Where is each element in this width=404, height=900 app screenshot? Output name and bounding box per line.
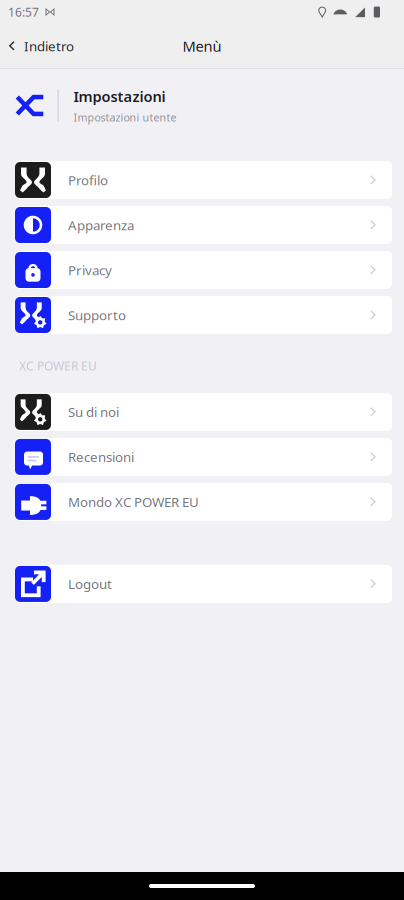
button[interactable]: Apparenza [15, 206, 392, 244]
button[interactable]: Indietro [0, 24, 88, 68]
button[interactable]: Privacy [15, 251, 392, 289]
button[interactable]: Su di noi [15, 393, 392, 431]
button[interactable]: Mondo XC POWER EU [15, 483, 392, 521]
staticText: Su di noi [68, 403, 119, 421]
button[interactable]: Profilo [15, 161, 392, 199]
staticText: Menù [182, 36, 221, 56]
button[interactable]: Recensioni [15, 438, 392, 476]
staticText: 16:57 [8, 4, 39, 20]
staticText: Logout [68, 575, 112, 593]
button[interactable]: Logout [15, 565, 392, 603]
button[interactable]: Supporto [15, 296, 392, 334]
staticText: Impostazioni [74, 87, 166, 106]
staticText: Profilo [68, 171, 108, 189]
staticText: Privacy [68, 261, 112, 279]
staticText: Apparenza [68, 216, 134, 234]
staticText: XC POWER EU [19, 358, 97, 374]
staticText: Recensioni [68, 448, 134, 466]
staticText: Supporto [68, 306, 126, 324]
staticText: Impostazioni utente [74, 110, 177, 124]
staticText: Indietro [24, 37, 74, 55]
staticText: Mondo XC POWER EU [68, 493, 199, 511]
